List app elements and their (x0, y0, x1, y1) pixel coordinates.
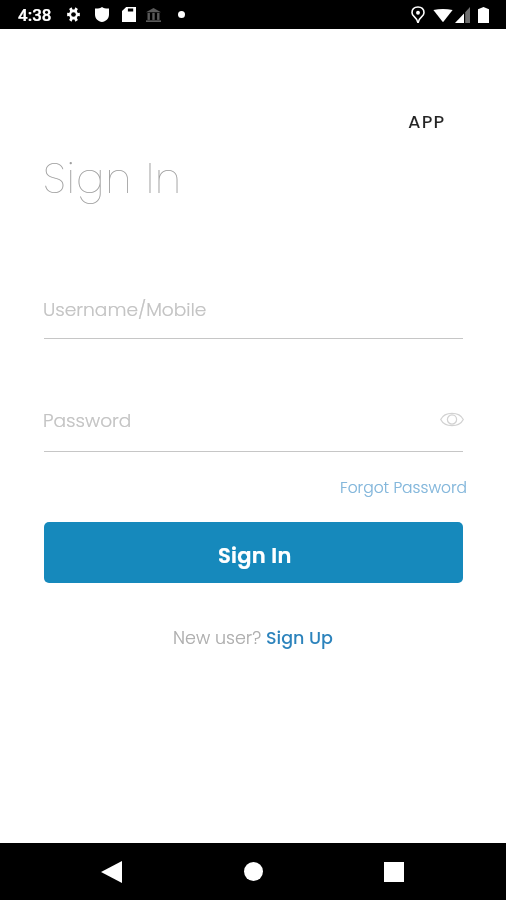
staticText: Username/Mobile (43, 296, 207, 322)
button[interactable]: Sign In (44, 522, 463, 583)
button[interactable]: Recent apps (355, 843, 432, 900)
button[interactable]: Sign Up (266, 626, 333, 651)
button[interactable]: Show password (436, 405, 467, 433)
staticText: Forgot Password (340, 477, 468, 499)
button[interactable]: Username/Mobile (44, 292, 463, 339)
staticText: Sign Up (266, 626, 333, 651)
staticText: Sign In (43, 149, 183, 208)
staticText: 4:38 (18, 5, 52, 25)
staticText: Sign In (218, 541, 292, 570)
button[interactable]: Password (44, 403, 463, 452)
button[interactable]: Home (215, 843, 292, 900)
button[interactable]: Forgot Password (340, 477, 468, 499)
staticText: New user? (173, 626, 266, 651)
button[interactable]: APP (408, 109, 446, 134)
staticText: APP (408, 109, 446, 134)
button[interactable]: Back (73, 843, 150, 900)
staticText: Password (43, 407, 132, 433)
